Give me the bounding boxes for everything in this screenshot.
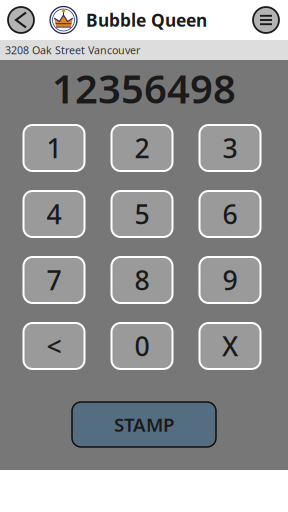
staticText: STAMP bbox=[114, 412, 174, 437]
staticText: Bubble Queen bbox=[86, 8, 207, 31]
staticText: 3 bbox=[222, 130, 237, 166]
button[interactable]: < bbox=[23, 323, 84, 369]
button[interactable]: X bbox=[199, 323, 260, 369]
button[interactable]: 5 bbox=[111, 191, 172, 237]
button[interactable]: 9 bbox=[199, 257, 260, 303]
button[interactable]: STAMP bbox=[72, 402, 216, 447]
staticText: 8 bbox=[134, 262, 149, 298]
button[interactable]: Menu bbox=[249, 0, 283, 40]
staticText: 0 bbox=[134, 328, 149, 364]
button[interactable]: 1 bbox=[23, 125, 84, 171]
staticText: X bbox=[222, 328, 238, 364]
button[interactable]: 3 bbox=[199, 125, 260, 171]
staticText: 3208 Oak Street Vancouver bbox=[5, 43, 140, 57]
button[interactable]: 2 bbox=[111, 125, 172, 171]
staticText: < bbox=[46, 328, 61, 364]
staticText: 4 bbox=[46, 196, 61, 232]
staticText: 2 bbox=[134, 130, 149, 166]
button[interactable]: 0 bbox=[111, 323, 172, 369]
button[interactable]: 4 bbox=[23, 191, 84, 237]
staticText: 7 bbox=[46, 262, 61, 298]
button[interactable]: Back bbox=[4, 0, 38, 40]
staticText: 6 bbox=[222, 196, 237, 232]
staticText: 9 bbox=[222, 262, 237, 298]
staticText: 5 bbox=[134, 196, 149, 232]
staticText: 1 bbox=[46, 130, 61, 166]
button[interactable]: 6 bbox=[199, 191, 260, 237]
button[interactable]: 8 bbox=[111, 257, 172, 303]
button[interactable]: 7 bbox=[23, 257, 84, 303]
staticText: 12356498 bbox=[52, 61, 236, 114]
